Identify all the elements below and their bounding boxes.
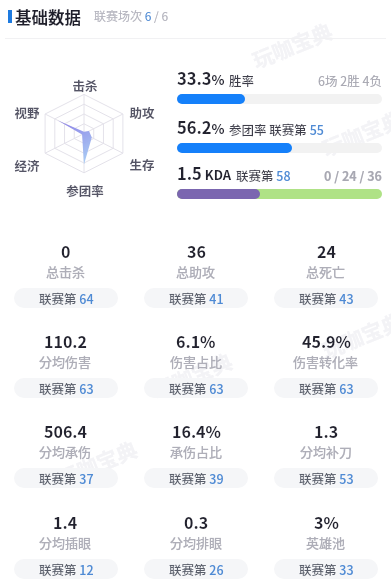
staticText: 视野: [14, 103, 40, 121]
staticText: 分均承伤: [39, 442, 92, 461]
staticText: 总击杀: [46, 262, 86, 281]
staticText: 参团率 联赛第 55: [229, 120, 324, 138]
staticText: 联赛第 37: [39, 469, 94, 487]
staticText: 1.5 KDA: [177, 161, 232, 185]
button[interactable]: 6.1%: [131, 333, 261, 405]
staticText: 联赛第 63: [39, 379, 94, 397]
staticText: 联赛第 12: [39, 560, 94, 578]
staticText: 承伤占比: [170, 442, 223, 461]
staticText: 玩咖宝典: [247, 15, 336, 75]
staticText: 玩咖宝典: [317, 305, 391, 365]
staticText: 联赛第 26: [169, 560, 224, 578]
button[interactable]: 110.2: [0, 333, 131, 405]
staticText: 0 / 24 / 36: [324, 166, 382, 184]
button[interactable]: 506.4: [0, 423, 131, 495]
staticText: 助攻: [129, 103, 155, 121]
staticText: 36: [187, 239, 206, 262]
button[interactable]: 1.3: [261, 423, 391, 495]
staticText: 分均插眼: [39, 533, 92, 552]
staticText: 33.3%: [177, 66, 225, 90]
staticText: 分均伤害: [39, 352, 92, 371]
staticText: 胜率: [229, 71, 255, 89]
staticText: 联赛第 41: [169, 289, 224, 307]
staticText: 6场 2胜 4负: [318, 71, 382, 89]
button[interactable]: 16.4%: [131, 423, 261, 495]
staticText: 联赛第 63: [299, 379, 354, 397]
staticText: 基础数据: [15, 5, 81, 29]
staticText: 6.1%: [176, 329, 216, 352]
staticText: 0.3: [184, 510, 209, 533]
staticText: 45.9%: [302, 329, 351, 352]
staticText: 110.2: [44, 329, 87, 352]
button[interactable]: 36: [131, 243, 261, 315]
button[interactable]: 24: [261, 243, 391, 315]
staticText: 伤害转化率: [293, 352, 359, 371]
staticText: 总死亡: [306, 262, 346, 281]
button[interactable]: 3%: [261, 514, 391, 585]
staticText: 玩咖宝典: [147, 345, 236, 405]
staticText: 联赛第 43: [299, 289, 354, 307]
button[interactable]: 45.9%: [261, 333, 391, 405]
staticText: 1.3: [314, 419, 339, 442]
staticText: 16.4%: [172, 419, 221, 442]
staticText: 0: [61, 239, 71, 262]
staticText: 1.4: [53, 510, 78, 533]
staticText: 联赛第 58: [236, 166, 291, 184]
staticText: 英雄池: [306, 533, 346, 552]
staticText: 联赛第 39: [169, 469, 224, 487]
button[interactable]: 1.4: [0, 514, 131, 585]
staticText: 联赛第 64: [39, 289, 94, 307]
staticText: 联赛第 53: [299, 469, 354, 487]
staticText: 分均补刀: [300, 442, 353, 461]
staticText: 联赛第 33: [299, 560, 354, 578]
staticText: 56.2%: [177, 115, 225, 139]
staticText: 玩咖宝典: [52, 433, 141, 493]
staticText: 总助攻: [176, 262, 216, 281]
staticText: 击杀: [72, 76, 98, 94]
button[interactable]: 0.3: [131, 514, 261, 585]
staticText: 506.4: [44, 419, 87, 442]
staticText: 联赛第 63: [169, 379, 224, 397]
staticText: 分均排眼: [170, 533, 223, 552]
staticText: 24: [317, 239, 336, 262]
staticText: 3%: [314, 510, 339, 533]
staticText: 联赛场次 6 / 6: [94, 7, 169, 24]
staticText: 伤害占比: [170, 352, 223, 371]
staticText: 玩咖宝典: [317, 103, 391, 163]
staticText: 经济: [14, 156, 40, 174]
button[interactable]: 0: [0, 243, 131, 315]
staticText: 参团率: [66, 181, 104, 199]
staticText: 生存: [129, 155, 155, 173]
